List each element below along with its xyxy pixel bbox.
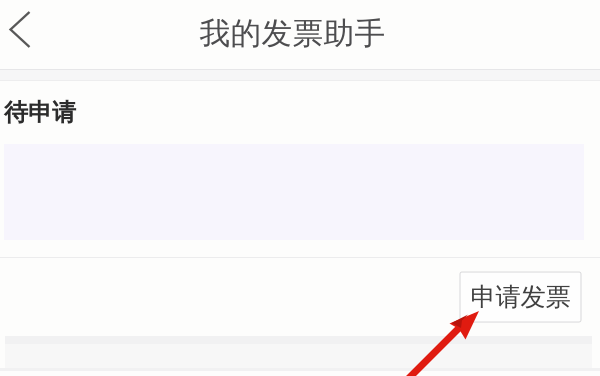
button[interactable]: 申请发票: [460, 272, 581, 322]
staticText: 我的发票助手: [199, 15, 385, 52]
button[interactable]: Back: [0, 0, 42, 69]
staticText: 待申请: [4, 98, 76, 127]
staticText: 申请发票: [470, 281, 570, 312]
